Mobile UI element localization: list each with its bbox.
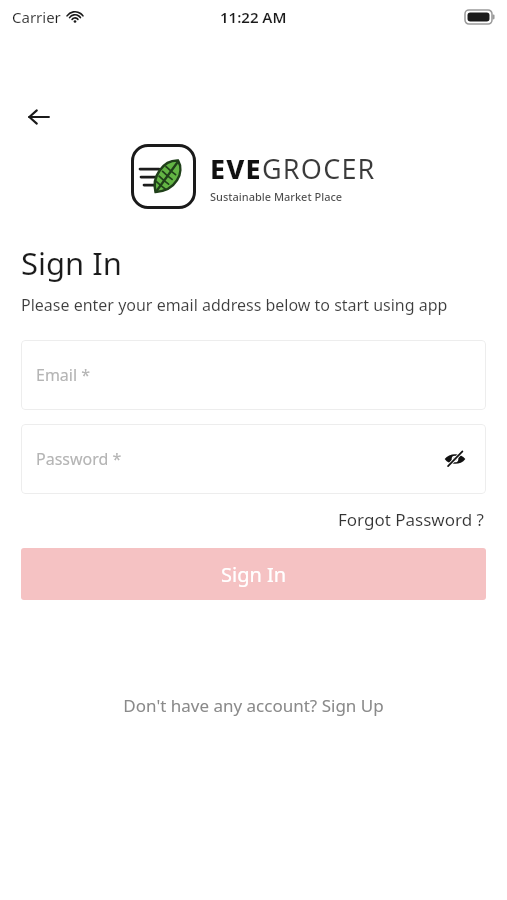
button[interactable]: Don't have any account? Sign Up <box>115 690 392 721</box>
staticText: Password * <box>36 448 122 470</box>
staticText: Sustainable Market Place <box>210 189 343 204</box>
staticText: Sign In <box>21 242 122 284</box>
staticText: EVE <box>210 150 262 187</box>
staticText: 11:22 AM <box>220 7 287 27</box>
staticText: Carrier <box>12 7 61 27</box>
staticText: GROCER <box>262 150 376 187</box>
staticText: Sign In <box>221 561 287 588</box>
staticText: Email * <box>36 364 91 386</box>
button[interactable]: Email * <box>21 340 486 410</box>
staticText: Please enter your email address below to… <box>21 294 448 316</box>
staticText: Don't have any account? Sign Up <box>123 694 384 717</box>
button[interactable]: Back <box>18 96 60 138</box>
staticText: Forgot Password ? <box>338 508 484 531</box>
button[interactable]: Password * <box>21 424 486 494</box>
button[interactable]: Sign In <box>21 548 486 600</box>
button[interactable]: Show password <box>436 440 474 478</box>
button[interactable]: Forgot Password ? <box>336 506 486 533</box>
